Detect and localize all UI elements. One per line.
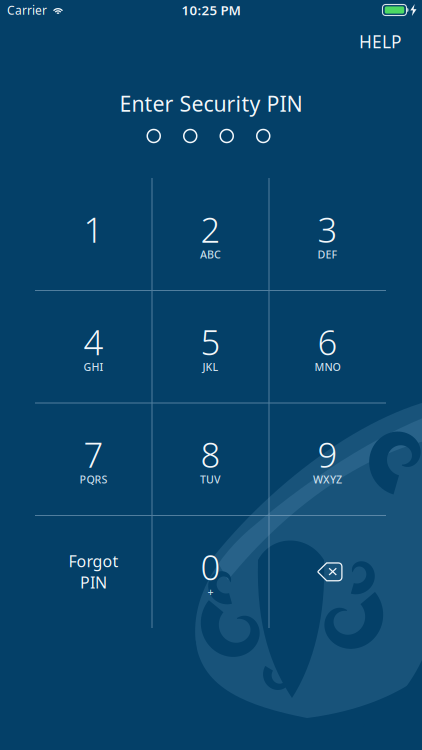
button[interactable]: 3 [269,178,386,290]
button[interactable]: 8 [152,403,269,515]
staticText: PIN [80,572,107,593]
staticText: DEF [317,247,337,261]
staticText: 1 [83,206,103,252]
button[interactable]: 9 [269,403,386,515]
staticText: 4 [83,319,103,365]
staticText: 3 [317,206,337,252]
staticText: 6 [317,319,337,365]
staticText: ABC [200,247,221,261]
staticText: Carrier [7,2,47,18]
staticText: 10:25 PM [181,1,240,19]
staticText: 5 [200,319,220,365]
staticText: 0 [200,544,220,590]
button[interactable]: HELP [347,22,413,61]
staticText: TUV [200,472,221,486]
staticText: GHI [83,360,103,374]
staticText: 9 [317,431,337,477]
button[interactable]: Delete [269,515,386,628]
staticText: WXYZ [313,472,342,486]
button[interactable]: 5 [152,290,269,403]
staticText: Forgot [68,550,118,572]
staticText: PQRS [79,472,107,486]
button[interactable]: 4 [35,290,152,403]
button[interactable]: 7 [35,403,152,515]
staticText: JKL [202,360,218,374]
staticText: 2 [200,206,220,252]
button[interactable]: 1 [35,178,152,290]
staticText: Enter Security PIN [119,89,302,118]
staticText: + [207,585,213,599]
button[interactable]: Forgot [35,515,152,628]
button[interactable]: 0 [152,515,269,628]
staticText: HELP [359,30,401,53]
staticText: MNO [314,360,340,374]
staticText: 7 [83,431,103,477]
button[interactable]: 6 [269,290,386,403]
staticText: 8 [200,431,220,477]
button[interactable]: 2 [152,178,269,290]
